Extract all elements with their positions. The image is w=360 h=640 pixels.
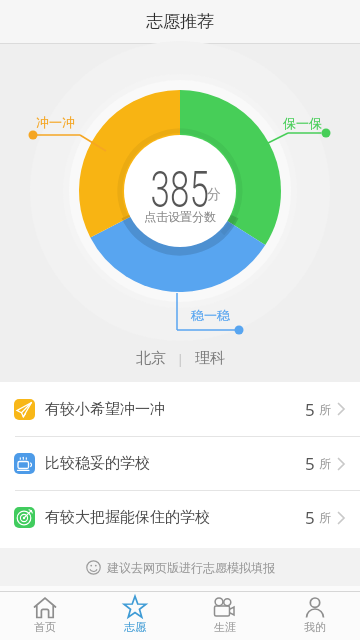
staticText: 生涯	[214, 620, 236, 634]
staticText: 所	[319, 510, 331, 525]
button[interactable]: 首页	[0, 592, 90, 640]
staticText: 北京	[136, 349, 166, 368]
staticText: 理科	[195, 349, 225, 368]
staticText: 有较小希望冲一冲	[45, 400, 165, 419]
button[interactable]: 有较小希望冲一冲	[0, 382, 360, 436]
staticText: 5	[305, 452, 315, 475]
button[interactable]: 我的	[270, 592, 360, 640]
staticText: |	[177, 351, 184, 367]
button[interactable]: 志愿	[90, 592, 180, 640]
staticText: 首页	[34, 620, 56, 634]
staticText: 所	[319, 402, 331, 417]
staticText: 建议去网页版进行志愿模拟填报	[107, 560, 275, 575]
button[interactable]: 建议去网页版进行志愿模拟填报	[0, 548, 360, 586]
staticText: 点击设置分数	[144, 209, 216, 224]
button[interactable]: 生涯	[180, 592, 270, 640]
staticText: 稳一稳	[191, 307, 230, 323]
staticText: 所	[319, 456, 331, 471]
staticText: 保一保	[283, 115, 322, 131]
staticText: 志愿	[124, 620, 146, 634]
staticText: 比较稳妥的学校	[45, 454, 150, 473]
button[interactable]: 有较大把握能保住的学校	[0, 491, 360, 544]
button[interactable]: 385	[151, 161, 209, 220]
staticText: 5	[305, 398, 315, 421]
staticText: 有较大把握能保住的学校	[45, 508, 210, 527]
staticText: 冲一冲	[36, 114, 75, 130]
staticText: 分	[207, 186, 221, 204]
staticText: 5	[305, 506, 315, 529]
staticText: 志愿推荐	[146, 11, 214, 32]
button[interactable]: 比较稳妥的学校	[0, 437, 360, 490]
staticText: 我的	[304, 620, 326, 634]
